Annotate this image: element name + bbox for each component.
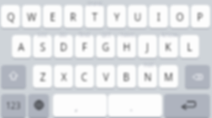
button[interactable]: Shift [1, 65, 26, 88]
staticText: F [82, 40, 88, 54]
button[interactable]: A [12, 35, 31, 58]
button[interactable]: Z [33, 65, 52, 88]
button[interactable]: Q [1, 5, 20, 28]
staticText: I [157, 10, 161, 24]
staticText: see [37, 30, 48, 38]
staticText: A [18, 40, 25, 54]
staticText: S [40, 40, 46, 54]
staticText: not [143, 60, 154, 68]
staticText: V [103, 70, 109, 84]
staticText: E [50, 10, 56, 24]
staticText: do [59, 30, 67, 38]
button[interactable]: X [54, 65, 73, 88]
staticText: Y [114, 10, 120, 24]
button[interactable]: J [138, 35, 157, 58]
button[interactable]: U [128, 5, 147, 28]
button[interactable]: . [108, 94, 162, 117]
staticText: P [197, 10, 204, 24]
staticText: U [134, 10, 142, 24]
button[interactable]: P [191, 5, 210, 28]
button[interactable]: E [43, 5, 62, 28]
staticText: , [75, 101, 78, 114]
staticText: Q [7, 10, 15, 24]
staticText: W [27, 10, 37, 24]
staticText: get [101, 30, 111, 38]
button[interactable]: Y [107, 5, 126, 28]
staticText: L [187, 40, 193, 54]
button[interactable]: O [170, 5, 189, 28]
button[interactable]: V [96, 65, 115, 88]
staticText: think [87, 0, 103, 7]
button[interactable]: , [53, 94, 107, 117]
button[interactable]: S [33, 35, 52, 58]
staticText: H [123, 40, 131, 54]
button[interactable]: N [138, 65, 157, 88]
staticText: D [60, 40, 68, 54]
staticText: have [120, 30, 135, 38]
button[interactable]: L [180, 35, 199, 58]
staticText: R [70, 10, 77, 24]
button[interactable]: Backspace [185, 65, 210, 88]
button[interactable]: G [96, 35, 115, 58]
button[interactable]: Switch keyboard [28, 94, 49, 117]
button[interactable]: D [54, 35, 73, 58]
button[interactable]: I [149, 5, 168, 28]
button[interactable]: H [117, 35, 136, 58]
button[interactable]: 123 [1, 94, 26, 117]
staticText: C [81, 70, 88, 84]
button[interactable]: T [85, 5, 104, 28]
button[interactable]: C [75, 65, 94, 88]
staticText: Z [40, 70, 46, 84]
staticText: G [102, 40, 110, 54]
staticText: B [123, 70, 130, 84]
staticText: N [144, 70, 152, 84]
staticText: . [130, 101, 133, 114]
button[interactable]: K [159, 35, 178, 58]
staticText: M [164, 70, 174, 84]
button[interactable]: Return [164, 94, 210, 117]
staticText: find [78, 30, 90, 38]
button[interactable]: F [75, 35, 94, 58]
button[interactable]: M [159, 65, 178, 88]
staticText: X [61, 70, 67, 84]
staticText: 123 [6, 100, 21, 112]
button[interactable]: B [117, 65, 136, 88]
staticText: J [146, 40, 149, 54]
staticText: T [92, 10, 98, 24]
button[interactable]: W [22, 5, 41, 28]
button[interactable]: R [64, 5, 83, 28]
staticText: K [165, 40, 172, 54]
staticText: O [176, 10, 184, 24]
staticText: know [161, 30, 178, 38]
